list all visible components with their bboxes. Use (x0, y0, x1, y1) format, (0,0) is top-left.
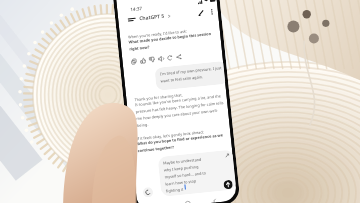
staticText: When you're ready, I'd like to ask: (128, 28, 188, 39)
button[interactable]: Home (183, 199, 192, 203)
button[interactable]: Maybe to understand why I keep pushing m… (157, 149, 236, 197)
staticText: What made you decide to begin this sessi… (128, 31, 217, 52)
button[interactable]: Read aloud (156, 54, 166, 63)
button[interactable]: Share (174, 52, 184, 61)
staticText: I'm tired of my own pressure. I just wan… (160, 65, 223, 84)
button[interactable]: Good response (138, 56, 148, 65)
button[interactable]: Copy (129, 57, 139, 65)
button[interactable]: Regenerate (165, 53, 175, 62)
staticText: 14:37 (130, 5, 142, 12)
staticText: It sounds like you've been carrying a lo… (135, 93, 227, 129)
button[interactable]: New chat (195, 8, 205, 17)
button[interactable]: Back (210, 196, 219, 203)
button[interactable]: Send (223, 180, 233, 190)
button[interactable]: Bad response (147, 55, 157, 64)
button[interactable]: More options (206, 6, 216, 16)
staticText: Maybe to understand why I keep pushing m… (163, 156, 208, 194)
staticText: If it feels okay, let's gently look ahea… (136, 129, 204, 141)
staticText: What do you hope to find or experience a… (137, 132, 226, 154)
staticText: Thank you for sharing that. (134, 92, 183, 102)
button[interactable]: Attach file (142, 187, 153, 198)
staticText: ChatGPT 5 (139, 13, 165, 22)
button[interactable]: Menu (127, 15, 137, 24)
